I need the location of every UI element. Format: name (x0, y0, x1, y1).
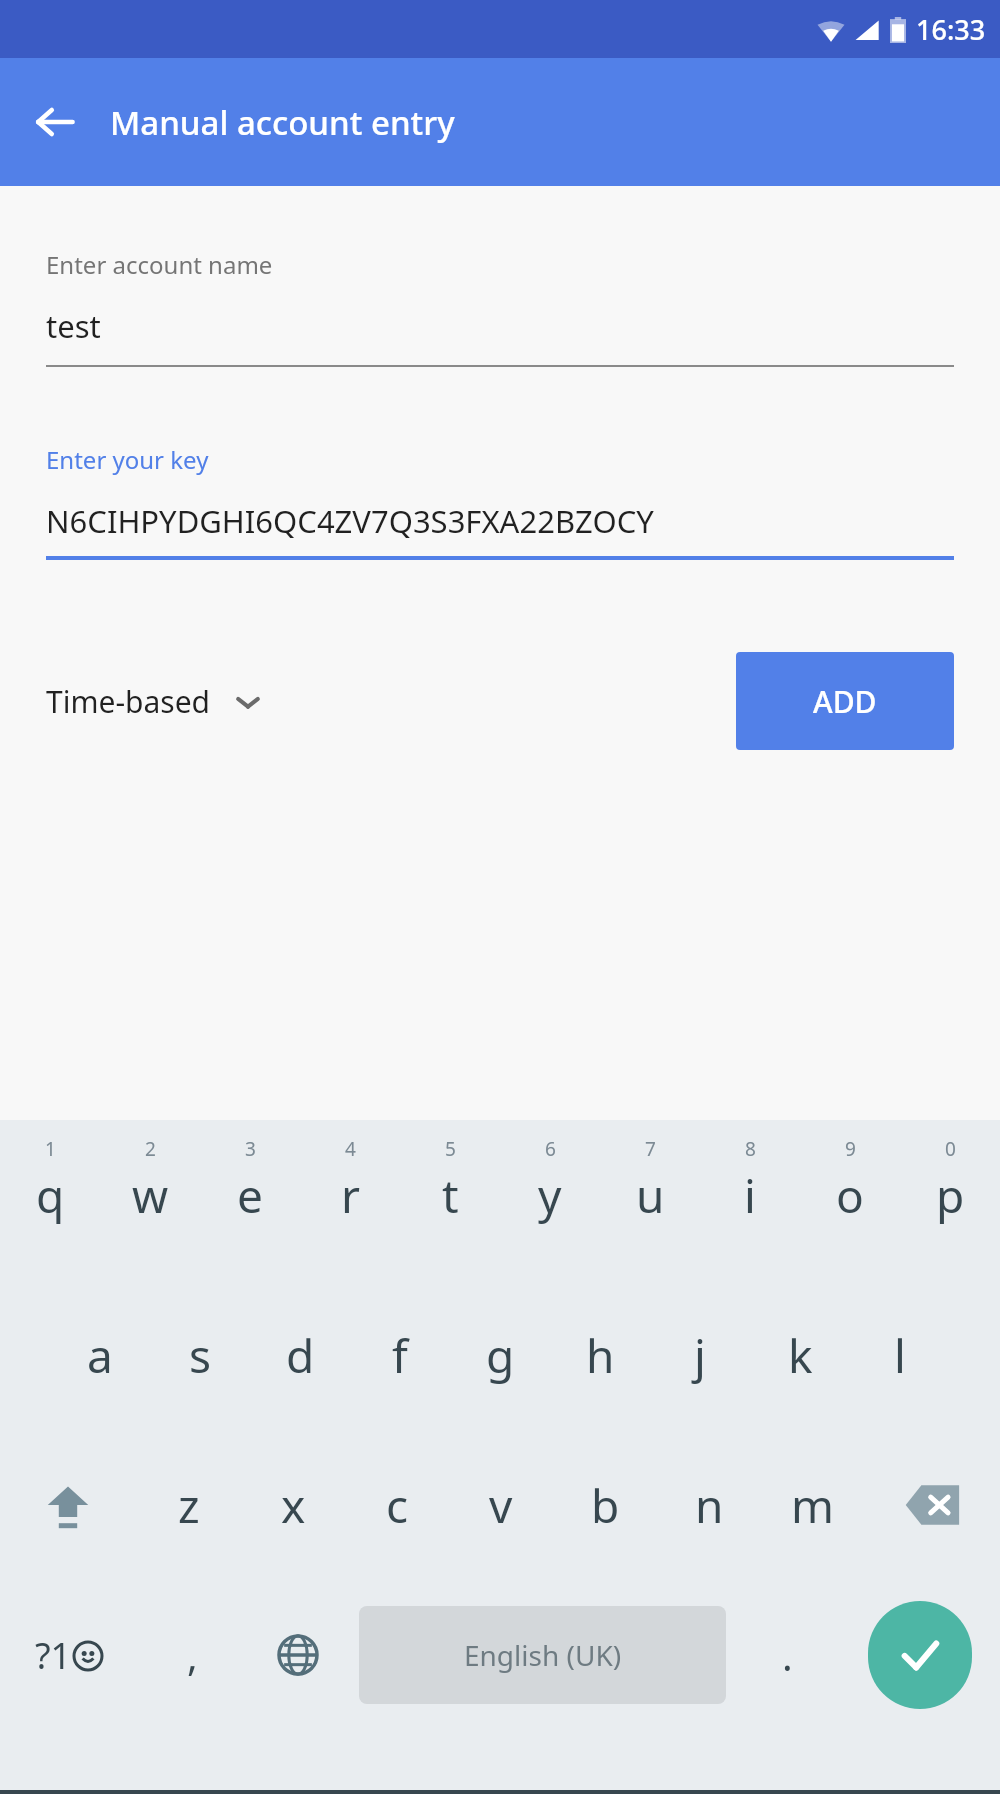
button[interactable]: 3 (200, 1128, 300, 1280)
button[interactable]: 2 (100, 1128, 200, 1280)
staticText: Time-based (46, 681, 211, 722)
staticText: Enter account name (46, 248, 273, 281)
staticText: 16:33 (916, 11, 986, 48)
staticText: Enter your key (46, 443, 209, 476)
staticText: x (281, 1474, 306, 1537)
staticText: r (341, 1164, 360, 1227)
staticText: v (489, 1474, 513, 1537)
staticText: 0 (945, 1136, 956, 1162)
button[interactable]: Back (22, 89, 88, 155)
button[interactable]: j (650, 1280, 750, 1430)
button[interactable]: a (50, 1280, 150, 1430)
button[interactable]: m (761, 1430, 865, 1580)
staticText: z (178, 1474, 200, 1537)
button[interactable]: ?1 (0, 1580, 139, 1730)
button[interactable]: 5 (400, 1128, 500, 1280)
staticText: q (36, 1164, 65, 1227)
button[interactable]: 6 (500, 1128, 600, 1280)
staticText: a (87, 1324, 113, 1387)
button[interactable]: d (250, 1280, 350, 1430)
staticText: b (591, 1474, 620, 1537)
staticText: , (187, 1628, 198, 1682)
button[interactable]: . (734, 1580, 840, 1730)
button[interactable]: 9 (800, 1128, 900, 1280)
staticText: N6CIHPYDGHI6QC4ZV7Q3S3FXA22BZOCY (46, 500, 654, 542)
button[interactable]: ADD (736, 652, 954, 750)
staticText: f (392, 1324, 408, 1387)
staticText: d (286, 1324, 315, 1387)
button[interactable]: z (136, 1430, 241, 1580)
staticText: k (788, 1324, 813, 1387)
button[interactable]: n (657, 1430, 761, 1580)
staticText: l (894, 1324, 906, 1387)
button[interactable]: k (750, 1280, 850, 1430)
staticText: . (782, 1628, 793, 1682)
staticText: y (538, 1164, 562, 1227)
button[interactable]: Change language (245, 1580, 351, 1730)
staticText: w (132, 1164, 169, 1227)
staticText: n (695, 1474, 724, 1537)
staticText: 5 (445, 1136, 456, 1162)
staticText: j (694, 1324, 706, 1387)
button[interactable]: 0 (900, 1128, 1000, 1280)
staticText: u (636, 1164, 665, 1227)
staticText: 8 (745, 1136, 756, 1162)
staticText: o (836, 1164, 864, 1227)
button[interactable]: 1 (0, 1128, 100, 1280)
staticText: t (442, 1164, 459, 1227)
button[interactable]: Time-based (46, 681, 261, 722)
button[interactable]: v (449, 1430, 553, 1580)
staticText: Manual account entry (110, 100, 455, 145)
button[interactable]: , (139, 1580, 245, 1730)
button[interactable]: Shift (0, 1430, 136, 1580)
staticText: 6 (545, 1136, 556, 1162)
staticText: m (791, 1474, 835, 1537)
button[interactable]: g (450, 1280, 550, 1430)
staticText: s (189, 1324, 212, 1387)
button[interactable]: 8 (700, 1128, 800, 1280)
staticText: ?1 (35, 1631, 72, 1680)
button[interactable]: Backspace (865, 1430, 1000, 1580)
button[interactable]: Enter (840, 1580, 1000, 1730)
staticText: c (386, 1474, 409, 1537)
button[interactable]: 7 (600, 1128, 700, 1280)
button[interactable]: s (150, 1280, 250, 1430)
button[interactable]: c (345, 1430, 449, 1580)
button[interactable]: English (UK) (359, 1606, 726, 1704)
staticText: g (486, 1324, 515, 1387)
staticText: 7 (645, 1136, 656, 1162)
staticText: 4 (345, 1136, 356, 1162)
button[interactable]: b (553, 1430, 657, 1580)
staticText: 2 (145, 1136, 156, 1162)
staticText: 9 (845, 1136, 856, 1162)
staticText: test (46, 305, 101, 347)
staticText: e (237, 1164, 263, 1227)
button[interactable]: x (241, 1430, 345, 1580)
staticText: 1 (45, 1136, 56, 1162)
button[interactable]: l (850, 1280, 950, 1430)
staticText: h (586, 1324, 615, 1387)
staticText: ADD (813, 681, 877, 722)
staticText: English (UK) (464, 1636, 622, 1674)
staticText: 3 (245, 1136, 256, 1162)
button[interactable]: h (550, 1280, 650, 1430)
button[interactable]: 4 (300, 1128, 400, 1280)
staticText: i (744, 1164, 756, 1227)
staticText: p (936, 1164, 965, 1227)
button[interactable]: f (350, 1280, 450, 1430)
